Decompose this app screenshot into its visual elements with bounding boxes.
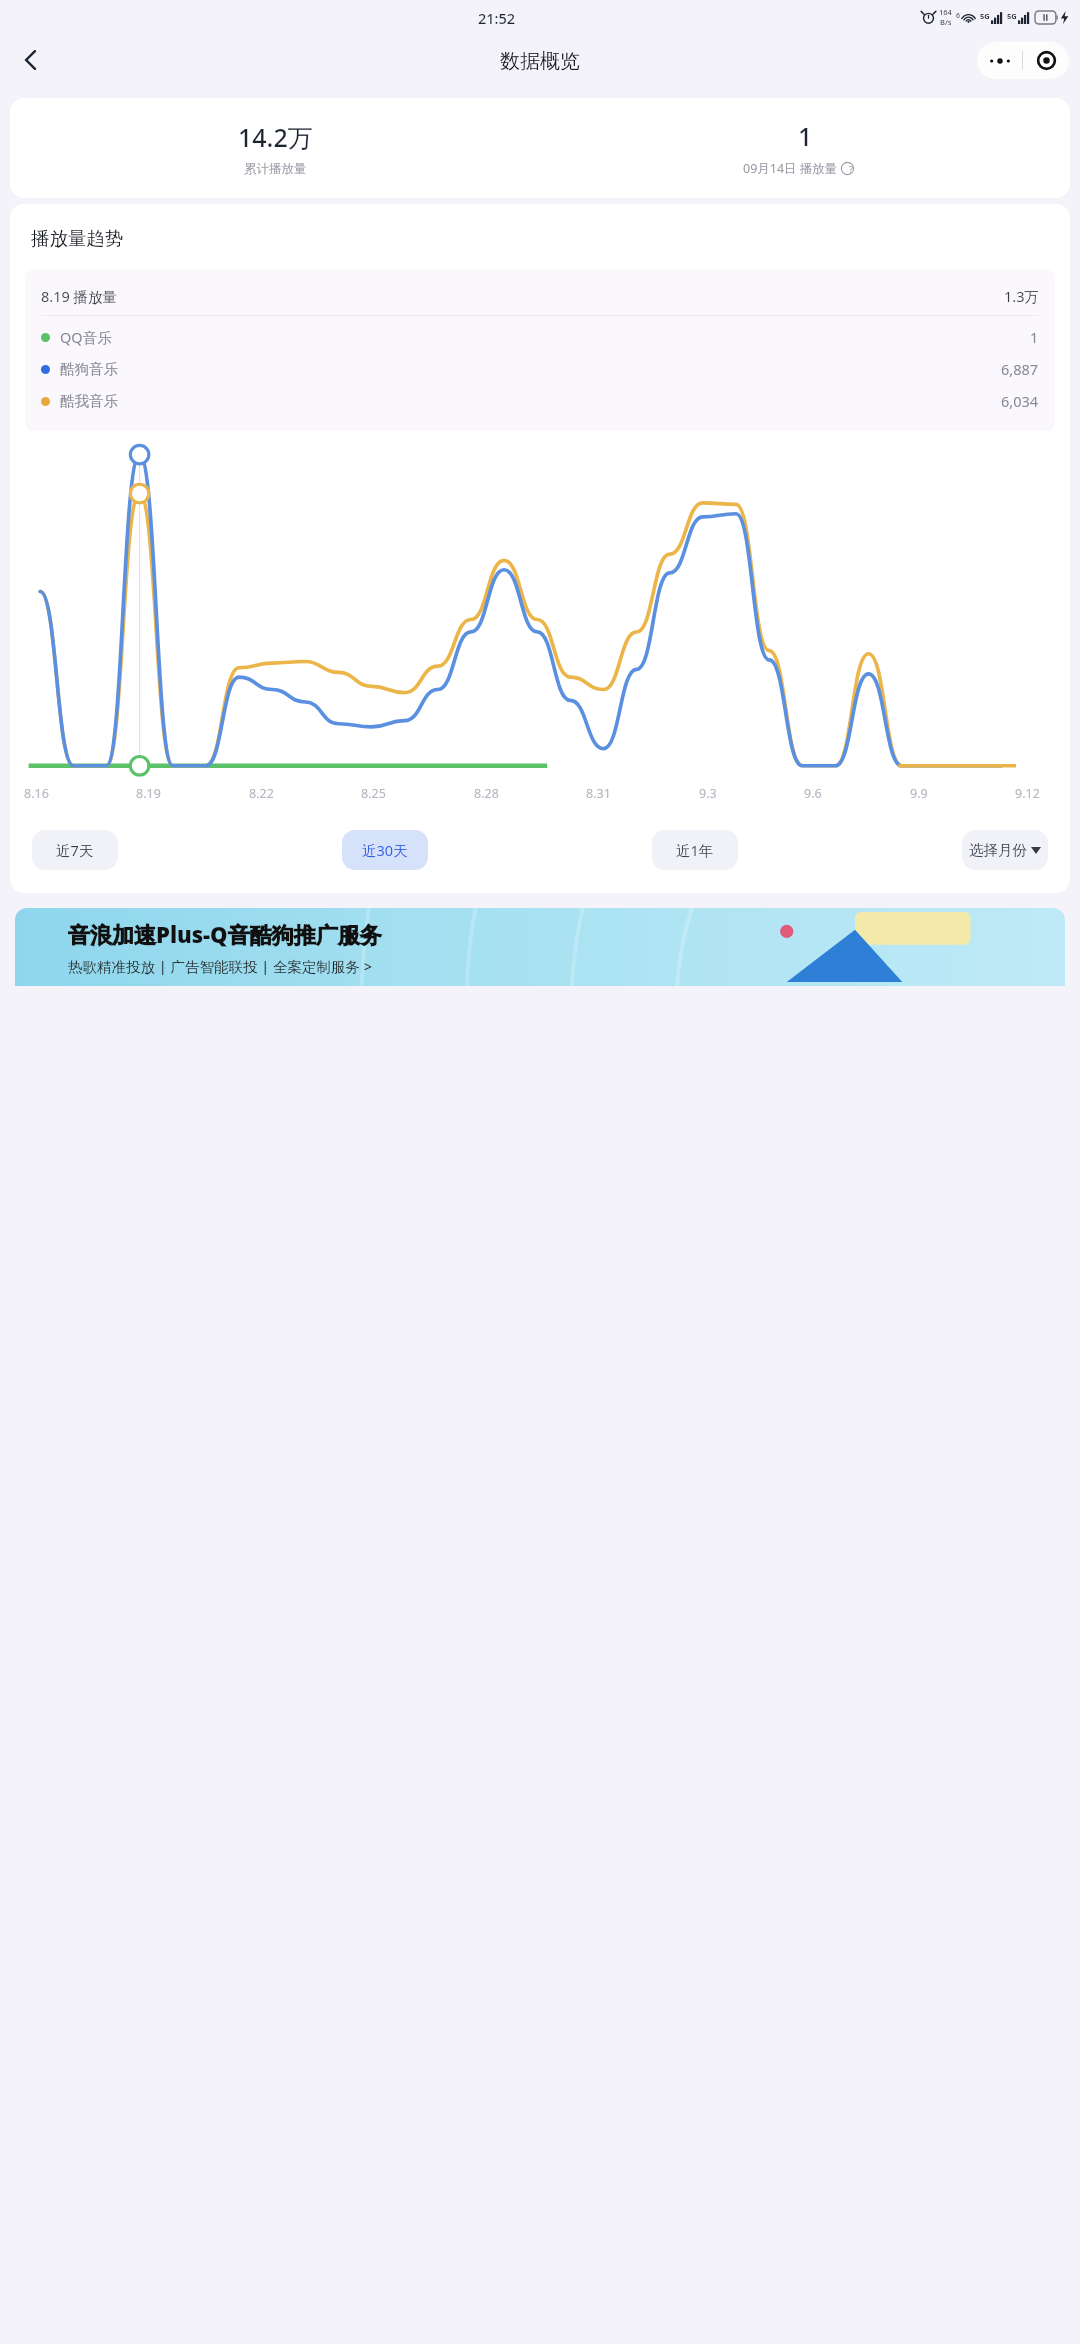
staticText: 1 xyxy=(1030,327,1039,347)
button[interactable]: Close xyxy=(1023,42,1069,79)
button[interactable]: 选择月份 xyxy=(962,830,1048,870)
button[interactable]: 近7天 xyxy=(32,830,118,870)
staticText: 播放量趋势 xyxy=(31,227,124,250)
staticText: 近30天 xyxy=(362,840,408,860)
button[interactable]: 1 xyxy=(540,98,1070,198)
staticText: 累计播放量 xyxy=(244,161,307,177)
staticText: 8.19 xyxy=(136,785,161,802)
button[interactable]: 音浪加速Plus-Q音酷狗推广服务 xyxy=(15,908,1065,986)
staticText: 9.6 xyxy=(804,785,822,802)
staticText: 酷狗音乐 xyxy=(60,360,118,378)
staticText: 9.12 xyxy=(1015,785,1040,802)
staticText: 8.16 xyxy=(24,785,49,802)
button[interactable]: 近1年 xyxy=(652,830,738,870)
staticText: 8.19 播放量 xyxy=(41,286,118,306)
staticText: 近1年 xyxy=(676,840,714,860)
staticText: 1.3万 xyxy=(1004,286,1039,306)
staticText: 5G xyxy=(980,11,990,21)
staticText: 热歌精准投放 | 广告智能联投 | 全案定制服务 > xyxy=(68,956,373,976)
staticText: 21:52 xyxy=(478,8,516,28)
staticText: 8.31 xyxy=(586,785,611,802)
staticText: 9.3 xyxy=(699,785,717,802)
staticText: 9.9 xyxy=(910,785,928,802)
staticText: 1 xyxy=(798,119,813,153)
staticText: 5G xyxy=(1007,11,1017,21)
button[interactable]: More xyxy=(977,42,1022,79)
staticText: 6,034 xyxy=(1001,391,1039,411)
staticText: 数据概览 xyxy=(500,49,580,74)
staticText: 音浪加速Plus-Q音酷狗推广服务 xyxy=(68,919,382,949)
staticText: 6,887 xyxy=(1001,359,1039,379)
staticText: ? xyxy=(849,163,853,175)
staticText: 近7天 xyxy=(56,840,94,860)
staticText: 09月14日 播放量 xyxy=(743,160,838,177)
button[interactable]: 14.2万 xyxy=(10,98,540,198)
staticText: 酷我音乐 xyxy=(60,392,118,410)
staticText: 8.28 xyxy=(474,785,499,802)
staticText: 8.25 xyxy=(361,785,386,802)
button[interactable]: 近30天 xyxy=(342,830,428,870)
staticText: 6 xyxy=(956,11,961,21)
staticText: 选择月份 xyxy=(969,841,1027,859)
staticText: 14.2万 xyxy=(238,120,313,154)
staticText: QQ音乐 xyxy=(60,327,112,347)
staticText: 8.22 xyxy=(249,785,274,802)
staticText: 164 xyxy=(939,7,952,17)
staticText: B/s xyxy=(940,17,952,27)
button[interactable]: Back xyxy=(8,37,54,83)
